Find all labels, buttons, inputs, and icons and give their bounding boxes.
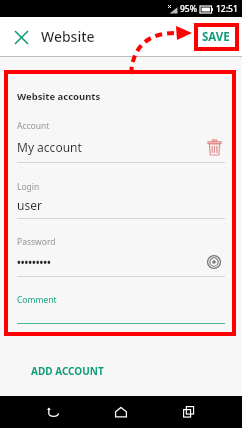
staticText: user [17, 197, 42, 213]
staticText: Website accounts [17, 90, 101, 103]
button[interactable]: SAVE [198, 25, 234, 49]
staticText: ••••••••• [17, 255, 203, 269]
staticText: Password [17, 236, 56, 248]
staticText: My account [17, 139, 203, 155]
button[interactable]: Back [38, 397, 68, 427]
staticText: ADD ACCOUNT [31, 364, 104, 378]
button[interactable]: ADD ACCOUNT [17, 359, 118, 383]
staticText: Account [17, 120, 50, 132]
staticText: SAVE [202, 29, 230, 45]
staticText: 95% [180, 3, 197, 15]
staticText: 12:51 [216, 3, 238, 15]
staticText: Comment [17, 294, 57, 306]
staticText: Website [41, 27, 95, 46]
button[interactable]: Home [106, 397, 136, 427]
button[interactable]: Recent apps [174, 397, 204, 427]
button[interactable]: Close [8, 24, 34, 50]
button[interactable]: Delete account [203, 136, 225, 158]
staticText: Login [17, 181, 40, 193]
button[interactable]: Show password [203, 251, 225, 273]
